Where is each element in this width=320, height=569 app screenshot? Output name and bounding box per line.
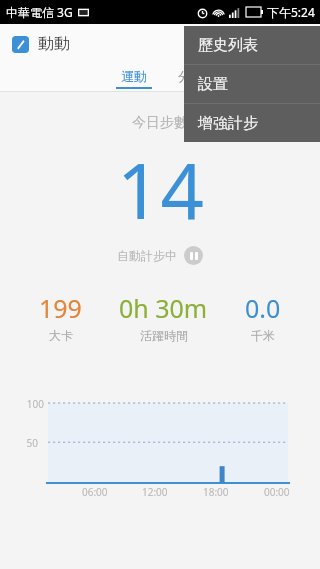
staticText: 千米 <box>251 328 275 343</box>
button[interactable]: 運動 <box>116 68 152 89</box>
staticText: 歷史列表 <box>198 36 258 55</box>
staticText: 自動計步中 <box>117 248 177 263</box>
staticText: 18:00 <box>203 485 229 499</box>
button[interactable]: 增強計步 <box>184 104 320 142</box>
staticText: 下午5:24 <box>267 4 315 20</box>
button[interactable]: 0.0 <box>241 291 285 343</box>
staticText: 中華電信 3G <box>6 4 73 20</box>
staticText: 06:00 <box>82 485 108 499</box>
staticText: 增強計步 <box>198 114 258 133</box>
staticText: 199 <box>39 291 82 325</box>
button[interactable]: 199 <box>35 291 86 343</box>
staticText: 12:00 <box>142 485 168 499</box>
button[interactable]: 分析 <box>178 68 204 84</box>
staticText: 0h 30m <box>119 291 208 325</box>
staticText: 活躍時間 <box>140 328 188 343</box>
button[interactable]: 0h 30m <box>115 291 212 343</box>
staticText: 100 <box>26 397 44 411</box>
staticText: 大卡 <box>49 328 73 343</box>
staticText: 運動 <box>121 68 147 84</box>
button[interactable]: 設置 <box>184 65 320 103</box>
staticText: 0.0 <box>245 291 281 325</box>
button[interactable]: 動動 <box>12 34 70 54</box>
staticText: 動動 <box>38 34 70 54</box>
staticText: 設置 <box>198 75 228 94</box>
button[interactable]: 歷史列表 <box>184 26 320 64</box>
button[interactable]: Map <box>204 24 244 64</box>
button[interactable]: Pause <box>184 246 203 265</box>
staticText: 14 <box>117 138 204 242</box>
staticText: 分析 <box>178 68 204 84</box>
staticText: 00:00 <box>264 485 290 499</box>
staticText: 今日步數 <box>132 114 188 132</box>
button[interactable]: Edit <box>244 24 284 64</box>
staticText: 50 <box>26 436 38 450</box>
